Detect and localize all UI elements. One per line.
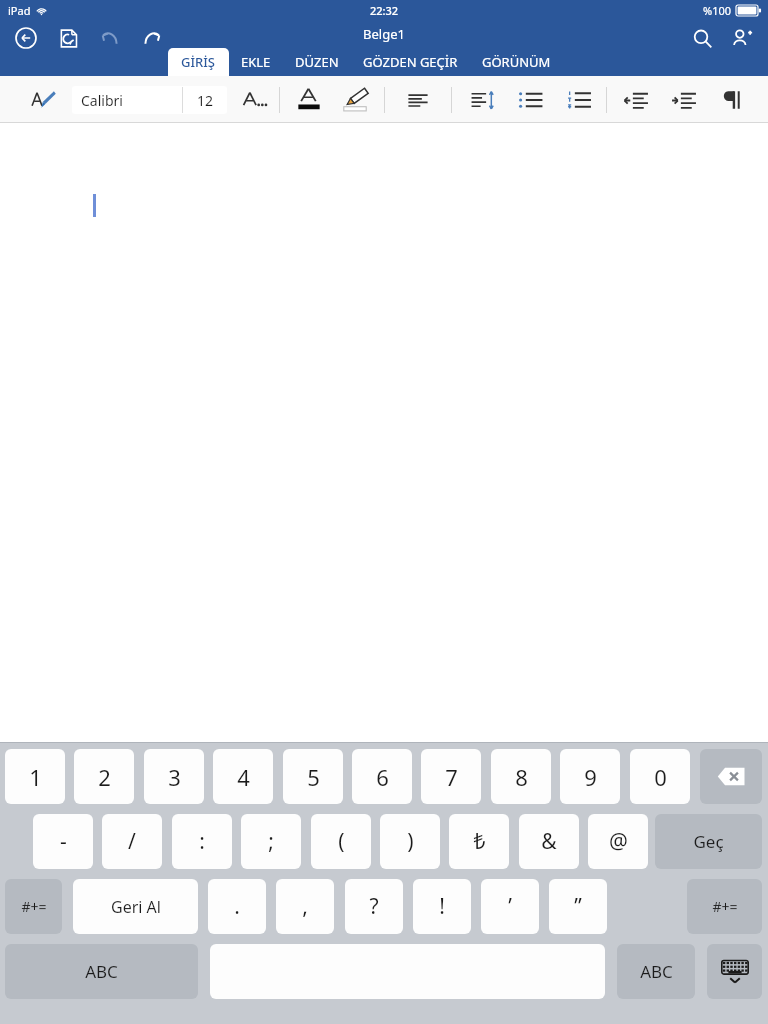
button[interactable]: Font formatting: [239, 85, 269, 115]
button[interactable]: Increase indent: [669, 85, 699, 115]
staticText: 9: [584, 762, 597, 792]
staticText: 1: [29, 762, 42, 792]
button[interactable]: Bullets: [516, 85, 546, 115]
button[interactable]: ₺: [449, 814, 509, 869]
button[interactable]: #+=: [687, 879, 762, 934]
staticText: 5: [307, 762, 320, 792]
button[interactable]: (: [311, 814, 371, 869]
staticText: ABC: [640, 960, 673, 983]
button[interactable]: Undo: [94, 22, 126, 54]
staticText: Geç: [693, 830, 724, 853]
staticText: @: [609, 827, 628, 856]
staticText: /: [128, 827, 136, 856]
staticText: ₺: [473, 827, 486, 856]
button[interactable]: 9: [560, 749, 620, 804]
staticText: GİRİŞ: [181, 53, 216, 71]
button[interactable]: 8: [491, 749, 551, 804]
button[interactable]: -: [33, 814, 93, 869]
button[interactable]: 5: [283, 749, 343, 804]
staticText: 12: [197, 91, 214, 110]
button[interactable]: Geri Al: [73, 879, 198, 934]
staticText: %100: [703, 3, 732, 18]
staticText: ): [407, 827, 414, 856]
button[interactable]: ABC: [617, 944, 695, 999]
staticText: ’: [508, 892, 512, 921]
button[interactable]: Calibri: [72, 86, 227, 114]
staticText: GÖRÜNÜM: [482, 53, 551, 71]
button[interactable]: Numbering: [564, 85, 594, 115]
button[interactable]: ): [380, 814, 440, 869]
button[interactable]: Font color: [294, 85, 324, 115]
button[interactable]: /: [102, 814, 162, 869]
button[interactable]: Format painter: [28, 85, 58, 115]
button[interactable]: Share: [726, 22, 758, 54]
button[interactable]: @: [588, 814, 648, 869]
staticText: :: [199, 827, 205, 856]
button[interactable]: ”: [549, 879, 607, 934]
staticText: Geri Al: [111, 896, 161, 918]
button[interactable]: 7: [421, 749, 481, 804]
staticText: 4: [237, 762, 250, 792]
staticText: ABC: [85, 960, 118, 983]
staticText: 7: [445, 762, 458, 792]
staticText: Belge1: [363, 25, 405, 43]
button[interactable]: GİRİŞ: [168, 48, 229, 76]
staticText: ,: [302, 892, 308, 921]
staticText: !: [439, 892, 445, 921]
button[interactable]: :: [172, 814, 232, 869]
button[interactable]: Line spacing: [468, 85, 498, 115]
staticText: ;: [268, 827, 274, 856]
button[interactable]: 2: [74, 749, 134, 804]
button[interactable]: !: [413, 879, 471, 934]
button[interactable]: 1: [5, 749, 65, 804]
staticText: ”: [574, 892, 582, 921]
button[interactable]: 4: [213, 749, 273, 804]
button[interactable]: ’: [481, 879, 539, 934]
staticText: 8: [515, 762, 528, 792]
staticText: .: [234, 892, 240, 921]
button[interactable]: 3: [144, 749, 204, 804]
staticText: ?: [369, 892, 379, 921]
button[interactable]: EKLE: [229, 48, 283, 76]
button[interactable]: Search: [686, 22, 718, 54]
button[interactable]: Save: [52, 22, 84, 54]
staticText: #+=: [712, 897, 738, 916]
button[interactable]: DÜZEN: [283, 48, 351, 76]
staticText: EKLE: [241, 53, 271, 71]
button[interactable]: [0, 123, 768, 783]
staticText: #+=: [21, 897, 47, 916]
staticText: DÜZEN: [295, 53, 339, 71]
button[interactable]: 0: [630, 749, 690, 804]
button[interactable]: Geç: [655, 814, 762, 869]
button[interactable]: GÖZDEN GEÇİR: [351, 48, 470, 76]
button[interactable]: 6: [352, 749, 412, 804]
button[interactable]: Back: [10, 22, 42, 54]
button[interactable]: Highlight: [340, 85, 370, 115]
staticText: 3: [168, 762, 181, 792]
staticText: -: [60, 827, 67, 856]
button[interactable]: Hide keyboard: [707, 944, 762, 999]
button[interactable]: ;: [241, 814, 301, 869]
button[interactable]: Redo: [136, 22, 168, 54]
button[interactable]: ABC: [5, 944, 198, 999]
button[interactable]: Decrease indent: [621, 85, 651, 115]
button[interactable]: GÖRÜNÜM: [470, 48, 563, 76]
button[interactable]: Align: [403, 85, 433, 115]
staticText: 22:32: [370, 3, 399, 18]
staticText: GÖZDEN GEÇİR: [363, 53, 458, 71]
button[interactable]: Paragraph marks: [717, 85, 747, 115]
button[interactable]: &: [519, 814, 579, 869]
button[interactable]: ,: [276, 879, 334, 934]
button[interactable]: ?: [345, 879, 403, 934]
button[interactable]: #+=: [5, 879, 62, 934]
staticText: (: [338, 827, 345, 856]
staticText: Calibri: [81, 91, 123, 110]
button[interactable]: .: [208, 879, 266, 934]
staticText: 0: [654, 762, 667, 792]
staticText: 6: [376, 762, 389, 792]
staticText: iPad: [8, 3, 31, 18]
staticText: &: [541, 827, 557, 856]
button[interactable]: Backspace: [700, 749, 762, 804]
staticText: 2: [98, 762, 111, 792]
